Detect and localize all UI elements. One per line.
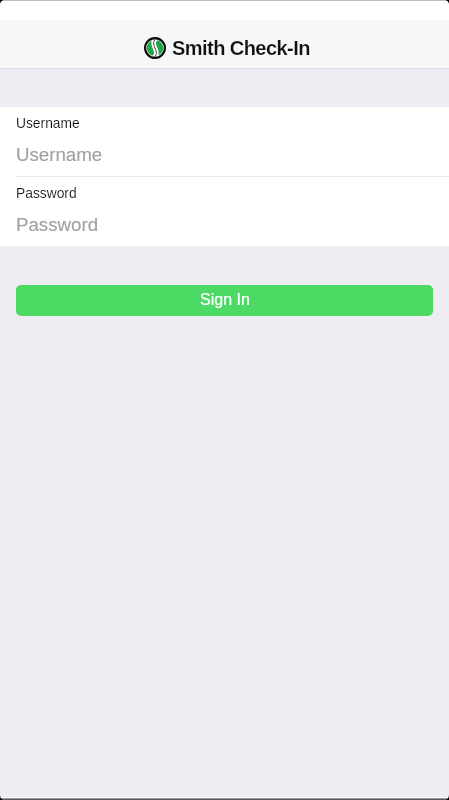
staticText: Smith Check-In (172, 37, 310, 59)
staticText: Username (16, 116, 80, 131)
other: Smith logo (144, 37, 166, 59)
staticText: Sign In (200, 291, 250, 309)
button[interactable]: Smith logo (144, 37, 310, 59)
button[interactable]: Username (0, 107, 449, 176)
staticText: Username (16, 144, 103, 165)
staticText: Password (16, 186, 77, 201)
button[interactable]: Sign In (16, 285, 433, 316)
staticText: Password (16, 214, 99, 235)
button[interactable]: Password (0, 177, 449, 246)
